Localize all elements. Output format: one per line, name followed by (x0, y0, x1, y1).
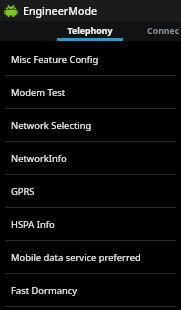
button[interactable]: Connectivity (123, 22, 181, 41)
staticText: HSPA Info (11, 218, 55, 231)
staticText: GPRS (11, 185, 35, 198)
button[interactable]: Mobile data service preferred (0, 241, 181, 274)
other: EngineerMode app icon (5, 5, 17, 17)
button[interactable]: GPRS (0, 175, 181, 208)
staticText: Fast Dormancy (11, 284, 78, 297)
staticText: Telephony (57, 25, 123, 37)
button[interactable]: Network Selecting (0, 109, 181, 142)
button[interactable]: Telephony (57, 22, 123, 41)
button[interactable]: Fast Dormancy (0, 274, 181, 307)
button[interactable]: NetworkInfo (0, 142, 181, 175)
staticText: Network Selecting (11, 119, 92, 132)
staticText: Mobile data service preferred (11, 251, 141, 264)
staticText: EngineerMode (23, 4, 98, 18)
staticText: Connectivity (147, 25, 181, 37)
button[interactable]: EngineerMode app icon (0, 0, 181, 21)
button[interactable]: Modem Test (0, 76, 181, 109)
button[interactable]: Misc Feature Config (0, 43, 181, 76)
button[interactable]: HSPA Info (0, 208, 181, 241)
staticText: Modem Test (11, 86, 66, 99)
staticText: Misc Feature Config (11, 53, 99, 66)
staticText: NetworkInfo (11, 152, 67, 165)
